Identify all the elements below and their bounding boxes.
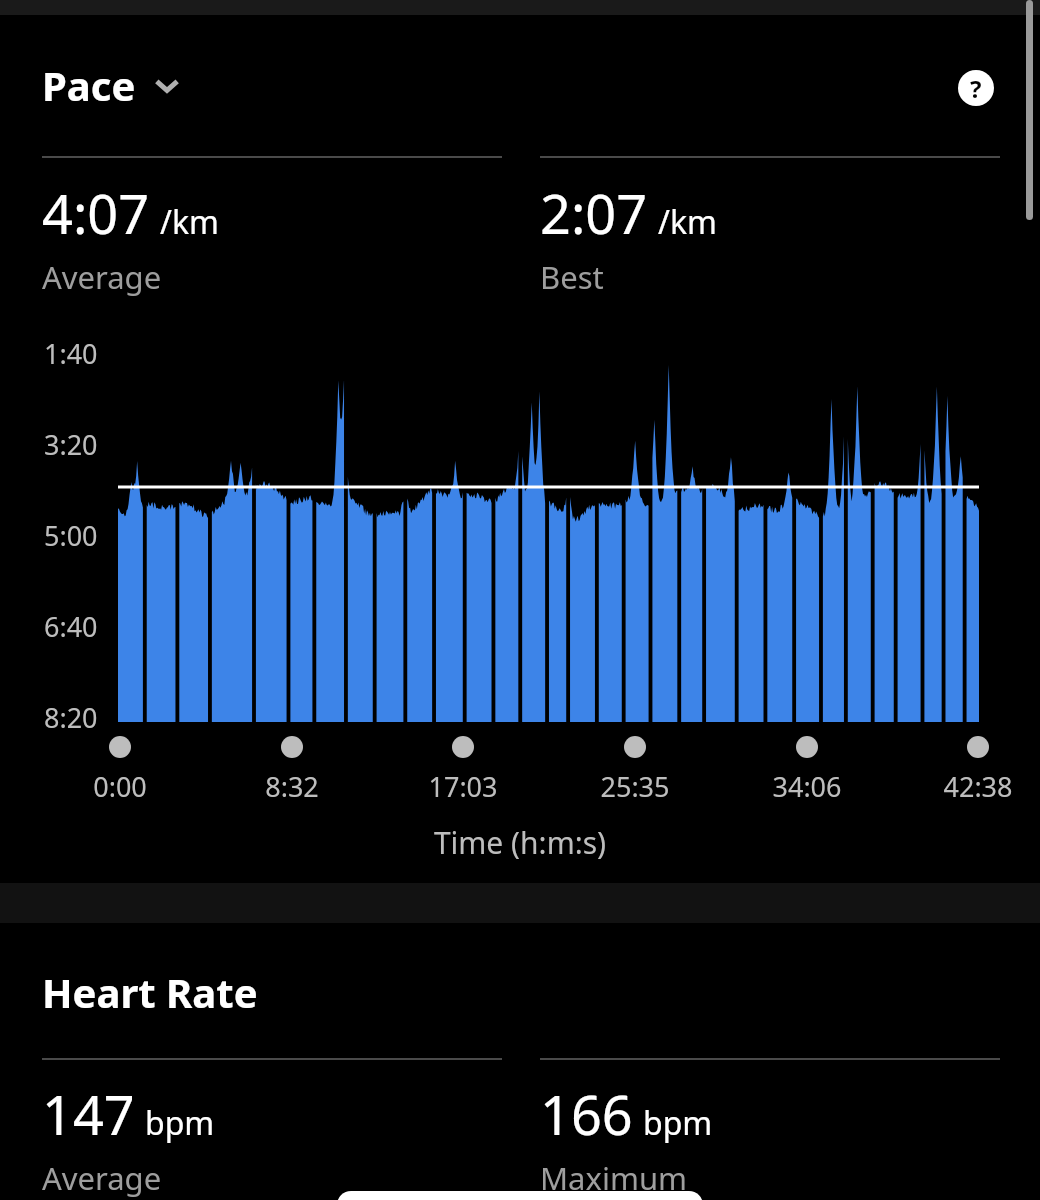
staticText: Best bbox=[540, 256, 604, 298]
staticText: 166 bbox=[540, 1077, 633, 1151]
staticText: 3:20 bbox=[44, 426, 98, 463]
staticText: /km bbox=[658, 200, 717, 244]
staticText: ? bbox=[970, 72, 982, 105]
staticText: bpm bbox=[643, 1101, 713, 1145]
staticText: 8:20 bbox=[44, 699, 98, 736]
staticText: 17:03 bbox=[408, 768, 518, 805]
staticText: 147 bbox=[42, 1077, 135, 1151]
staticText: 25:35 bbox=[580, 768, 690, 805]
staticText: bpm bbox=[145, 1101, 215, 1145]
button[interactable] bbox=[337, 1191, 703, 1200]
staticText: 8:32 bbox=[237, 768, 347, 805]
staticText: 2:07 bbox=[540, 176, 648, 250]
button[interactable]: Pace bbox=[42, 58, 182, 112]
staticText: /km bbox=[160, 200, 219, 244]
staticText: 1:40 bbox=[44, 335, 98, 372]
staticText: Average bbox=[42, 256, 162, 298]
staticText: 42:38 bbox=[923, 768, 1033, 805]
staticText: Pace bbox=[42, 58, 136, 112]
staticText: 34:06 bbox=[752, 768, 862, 805]
staticText: 6:40 bbox=[44, 608, 98, 645]
staticText: Average bbox=[42, 1157, 162, 1199]
staticText: 0:00 bbox=[65, 768, 175, 805]
staticText: Heart Rate bbox=[42, 965, 258, 1019]
staticText: Maximum bbox=[540, 1157, 688, 1199]
button[interactable]: Help bbox=[958, 70, 994, 106]
staticText: 5:00 bbox=[44, 517, 98, 554]
button[interactable]: Heart Rate bbox=[42, 965, 258, 1019]
staticText: 4:07 bbox=[42, 176, 150, 250]
staticText: Time (h:m:s) bbox=[0, 822, 1040, 863]
